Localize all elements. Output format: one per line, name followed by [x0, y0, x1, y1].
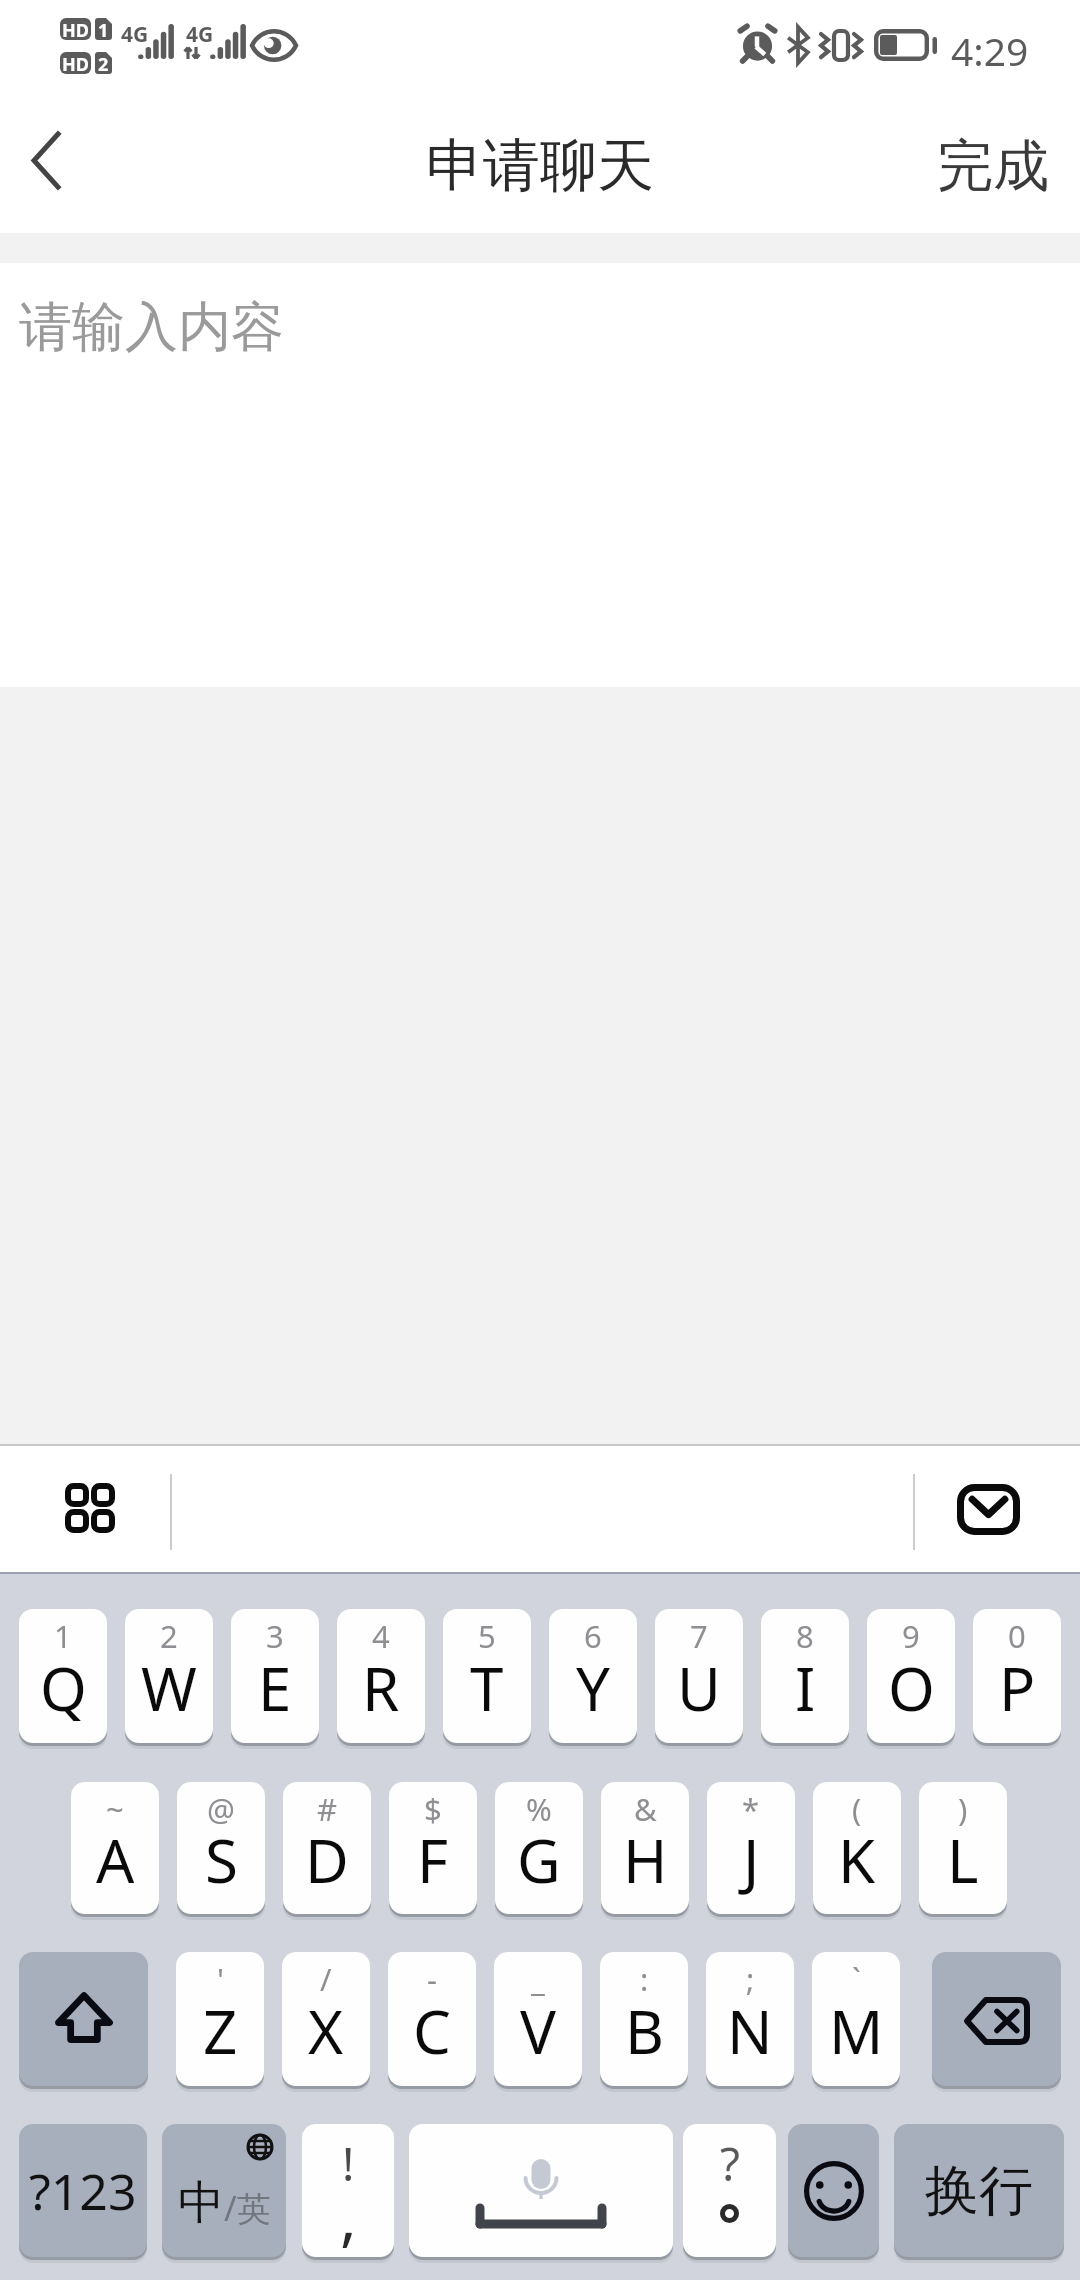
button[interactable]: & — [601, 1782, 689, 1914]
staticText: HD — [62, 18, 89, 40]
button[interactable]: ` — [812, 1952, 900, 2086]
button[interactable]: ) — [919, 1782, 1007, 1914]
staticText: 2 — [98, 52, 109, 74]
button[interactable]: / — [282, 1952, 370, 2086]
button[interactable]: - — [388, 1952, 476, 2086]
staticText: 3 — [266, 1615, 284, 1657]
staticText: 7 — [690, 1615, 708, 1657]
staticText: & — [634, 1788, 657, 1830]
staticText: V — [520, 1990, 556, 2072]
staticText: % — [526, 1788, 552, 1830]
staticText: E — [258, 1647, 292, 1729]
staticText: B — [625, 1990, 664, 2072]
button[interactable]: $ — [389, 1782, 477, 1914]
button[interactable]: 7 — [655, 1609, 743, 1743]
staticText: 申请聊天 — [426, 130, 654, 202]
staticText: 中 — [178, 2174, 224, 2232]
staticText: - — [427, 1958, 437, 2000]
button[interactable]: : — [600, 1952, 688, 2086]
button[interactable]: Space — [409, 2124, 673, 2257]
staticText: 4G — [186, 20, 214, 49]
staticText: 6 — [584, 1615, 602, 1657]
staticText: 4G — [121, 20, 149, 49]
staticText: W — [141, 1647, 197, 1729]
button[interactable]: ; — [706, 1952, 794, 2086]
staticText: K — [838, 1819, 876, 1901]
button[interactable]: 2 — [125, 1609, 213, 1743]
button[interactable]: More functions — [39, 1454, 143, 1564]
staticText: ; — [746, 1958, 755, 2000]
button[interactable]: # — [283, 1782, 371, 1914]
staticText: 完成 — [937, 131, 1049, 202]
button[interactable]: ? — [683, 2124, 776, 2257]
staticText: / — [320, 1958, 332, 2000]
staticText: $ — [424, 1788, 442, 1830]
staticText: * — [742, 1788, 760, 1830]
button[interactable]: 5 — [443, 1609, 531, 1743]
staticText: F — [417, 1819, 449, 1901]
staticText: ~ — [106, 1788, 124, 1830]
staticText: U — [677, 1647, 721, 1729]
staticText: G — [517, 1819, 561, 1901]
staticText: 1 — [98, 18, 109, 40]
staticText: Q — [40, 1647, 87, 1729]
button[interactable]: Back — [0, 110, 96, 233]
button[interactable]: 6 — [549, 1609, 637, 1743]
button[interactable]: ?123 — [19, 2124, 147, 2257]
button[interactable]: 9 — [867, 1609, 955, 1743]
staticText: 请输入内容 — [19, 294, 284, 361]
staticText: H — [623, 1819, 668, 1901]
staticText: I — [795, 1647, 816, 1729]
button[interactable]: Hide keyboard — [936, 1454, 1040, 1564]
staticText: L — [947, 1819, 979, 1901]
staticText: 4 — [372, 1615, 390, 1657]
staticText: S — [205, 1819, 238, 1901]
staticText: D — [305, 1819, 349, 1901]
button[interactable]: Backspace — [932, 1952, 1061, 2086]
staticText: N — [727, 1990, 773, 2072]
staticText: R — [362, 1647, 400, 1729]
staticText: 换行 — [925, 2157, 1033, 2225]
staticText: ( — [852, 1788, 862, 1830]
button[interactable]: ! — [302, 2124, 394, 2257]
staticText: 9 — [902, 1615, 920, 1657]
button[interactable]: ( — [813, 1782, 901, 1914]
staticText: 5 — [478, 1615, 496, 1657]
button[interactable]: 4 — [337, 1609, 425, 1743]
button[interactable]: ~ — [71, 1782, 159, 1914]
staticText: : — [640, 1958, 649, 2000]
staticText: X — [308, 1990, 344, 2072]
button[interactable]: 8 — [761, 1609, 849, 1743]
staticText: J — [743, 1819, 760, 1901]
button[interactable]: 完成 — [937, 110, 1049, 233]
button[interactable]: % — [495, 1782, 583, 1914]
staticText: _ — [531, 1958, 545, 2000]
button[interactable]: _ — [494, 1952, 582, 2086]
staticText: ! — [342, 2132, 355, 2195]
button[interactable]: * — [707, 1782, 795, 1914]
button[interactable]: Emoji — [788, 2124, 879, 2257]
button[interactable]: 中 — [162, 2124, 286, 2257]
staticText: 0 — [1008, 1615, 1026, 1657]
button[interactable]: ' — [176, 1952, 264, 2086]
button[interactable]: Shift — [19, 1952, 148, 2086]
staticText: HD — [62, 52, 89, 74]
staticText: ? — [720, 2132, 740, 2195]
staticText: 2 — [160, 1615, 178, 1657]
staticText: Y — [576, 1647, 610, 1729]
staticText: /英 — [224, 2185, 271, 2231]
staticText: , — [340, 2174, 357, 2257]
button[interactable]: 0 — [973, 1609, 1061, 1743]
staticText: ) — [958, 1788, 968, 1830]
button[interactable]: 换行 — [894, 2124, 1064, 2257]
button[interactable]: @ — [177, 1782, 265, 1914]
button[interactable]: 1 — [19, 1609, 107, 1743]
button[interactable]: 3 — [231, 1609, 319, 1743]
staticText: 4:29 — [951, 24, 1029, 77]
staticText: ` — [852, 1958, 861, 2000]
staticText: @ — [207, 1788, 235, 1830]
staticText: 8 — [796, 1615, 814, 1657]
staticText: A — [96, 1819, 135, 1901]
staticText: C — [413, 1990, 451, 2072]
staticText: P — [999, 1647, 1036, 1729]
